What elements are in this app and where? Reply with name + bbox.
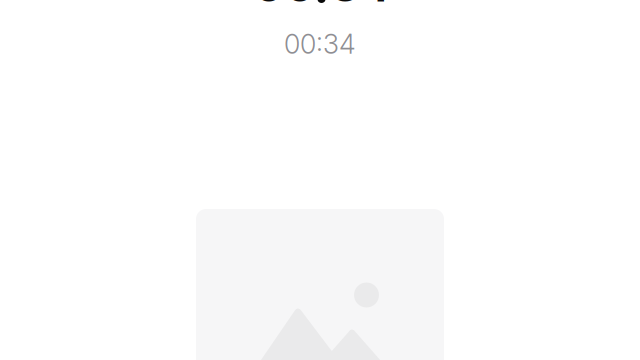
staticText: 00:34: [253, 0, 390, 13]
staticText: 00:34: [284, 28, 356, 60]
button[interactable]: Photo attachment: [196, 209, 444, 360]
